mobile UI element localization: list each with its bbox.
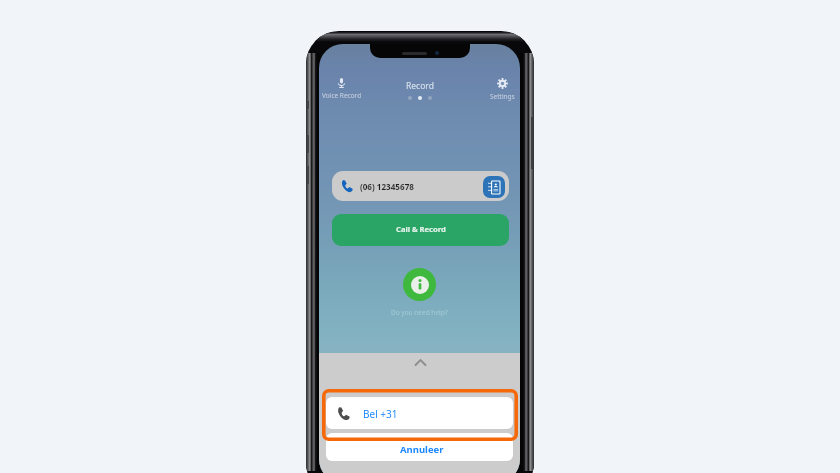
staticText: Settings [490, 92, 515, 101]
staticText: Bel +31 [363, 407, 398, 421]
staticText: Record [406, 80, 434, 92]
button[interactable]: Open contacts [483, 176, 505, 198]
staticText: Do you need help? [391, 308, 448, 317]
button[interactable]: Voice Record [319, 77, 366, 100]
button[interactable]: Do you need help [403, 268, 436, 301]
staticText: (06) 12345678 [360, 181, 414, 192]
button[interactable]: Bel +31 [326, 397, 513, 429]
button[interactable]: Call & Record [332, 214, 509, 246]
staticText: Voice Record [322, 91, 362, 100]
staticText: Call & Record [396, 224, 446, 234]
staticText: Annuleer [400, 443, 444, 456]
button[interactable]: Annuleer [326, 433, 513, 461]
button[interactable]: Settings [484, 78, 520, 101]
button[interactable]: (06) 12345678 [332, 171, 509, 201]
